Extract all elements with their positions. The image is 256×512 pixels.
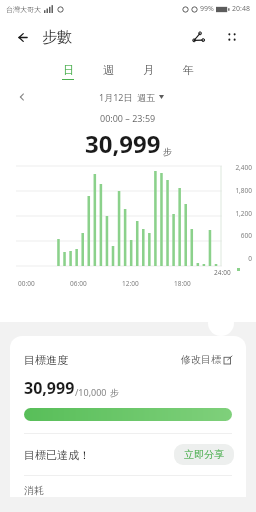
button[interactable]: 年 bbox=[177, 61, 199, 82]
staticText: 600 bbox=[240, 231, 252, 240]
button[interactable]: More options bbox=[220, 25, 244, 49]
staticText: 1,200 bbox=[235, 209, 252, 218]
staticText: 0 bbox=[248, 254, 252, 263]
button[interactable]: 修改目標 bbox=[179, 350, 234, 369]
staticText: 00:00 – 23:59 bbox=[100, 112, 156, 124]
staticText: 24:00 bbox=[214, 268, 231, 277]
staticText: 00:00 bbox=[18, 279, 35, 288]
staticText: 日 bbox=[63, 63, 74, 77]
button[interactable]: 月 bbox=[137, 61, 159, 82]
button[interactable]: 立即分享 bbox=[174, 444, 234, 465]
staticText: 年 bbox=[183, 63, 194, 77]
staticText: 立即分享 bbox=[184, 448, 224, 461]
staticText: 修改目標 bbox=[181, 353, 221, 366]
staticText: 1月12日 週五 bbox=[99, 91, 156, 103]
button[interactable]: Previous day bbox=[14, 89, 30, 105]
staticText: 台灣大哥大 bbox=[6, 5, 41, 14]
staticText: 18:00 bbox=[174, 279, 191, 288]
staticText: 週 bbox=[103, 63, 114, 77]
staticText: 06:00 bbox=[70, 279, 87, 288]
staticText: 消耗 bbox=[24, 484, 44, 497]
staticText: 20:48 bbox=[232, 4, 250, 14]
staticText: 30,999 bbox=[85, 127, 161, 160]
staticText: 2,400 bbox=[235, 163, 252, 172]
staticText: 12:00 bbox=[122, 279, 139, 288]
button[interactable]: 週 bbox=[97, 61, 119, 82]
staticText: 目標進度 bbox=[24, 353, 68, 367]
button[interactable]: Add record bbox=[208, 310, 234, 336]
staticText: 99% bbox=[200, 4, 214, 14]
staticText: 1,800 bbox=[235, 186, 252, 195]
staticText: 目標已達成！ bbox=[24, 448, 90, 462]
button[interactable]: 1月12日 週五 bbox=[95, 89, 168, 105]
staticText: 月 bbox=[143, 63, 154, 77]
staticText: 步 bbox=[110, 387, 119, 398]
button[interactable]: Share bbox=[186, 25, 210, 49]
button[interactable]: Back bbox=[12, 26, 34, 48]
staticText: 步數 bbox=[42, 28, 72, 47]
button[interactable]: 日 bbox=[57, 61, 79, 82]
staticText: 步 bbox=[163, 146, 172, 157]
staticText: /10,000 bbox=[75, 386, 107, 398]
staticText: 30,999 bbox=[24, 377, 75, 399]
